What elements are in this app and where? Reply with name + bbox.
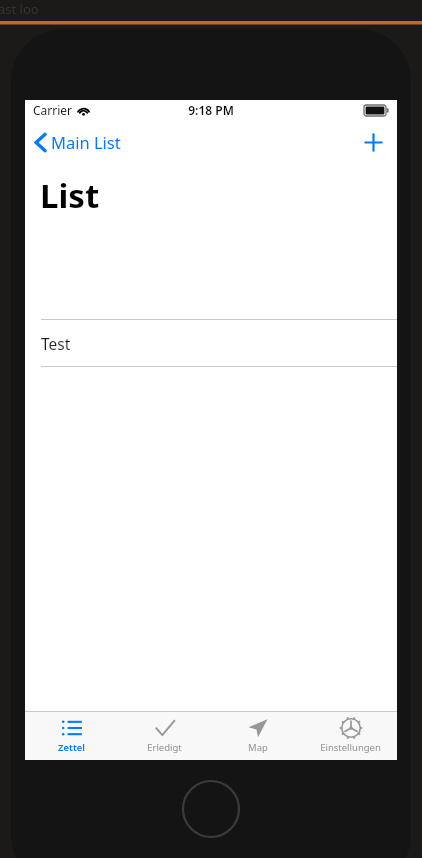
staticText: Map: [248, 741, 268, 754]
button[interactable]: Erledigt: [118, 712, 211, 760]
button[interactable]: Main List: [25, 125, 131, 159]
staticText: List: [40, 173, 100, 218]
staticText: 9:18 PM: [188, 102, 234, 118]
staticText: ast loo: [0, 0, 39, 18]
button[interactable]: Map: [211, 712, 304, 760]
staticText: Test: [41, 333, 71, 354]
staticText: Zettel: [58, 741, 85, 754]
staticText: Erledigt: [147, 741, 182, 754]
button[interactable]: Test: [25, 320, 397, 366]
staticText: Carrier: [33, 102, 73, 118]
button[interactable]: Zettel: [25, 712, 118, 760]
staticText: Main List: [51, 131, 121, 153]
button[interactable]: Add: [350, 123, 397, 162]
staticText: Einstellungen: [320, 741, 381, 754]
button[interactable]: Einstellungen: [304, 712, 397, 760]
